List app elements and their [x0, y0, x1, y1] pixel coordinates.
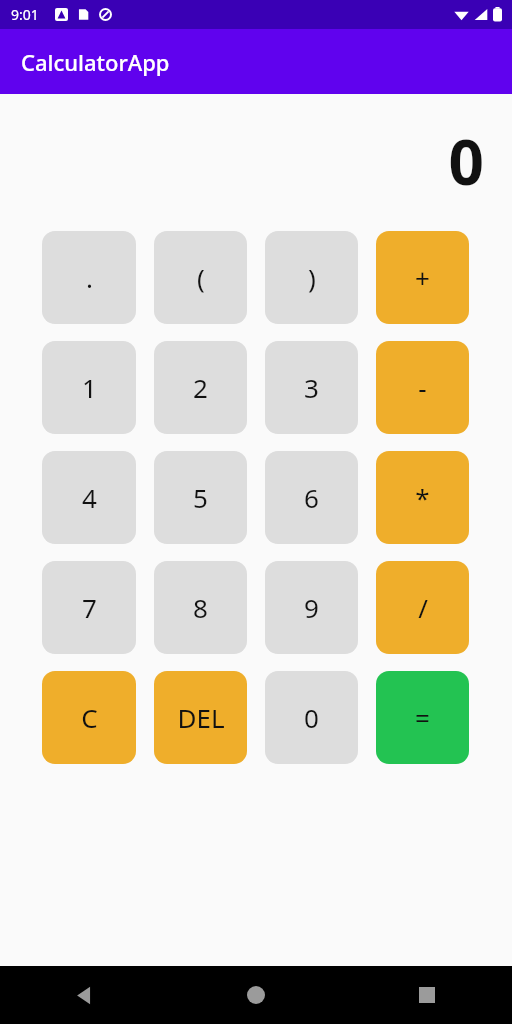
button[interactable]: = [376, 671, 469, 764]
button[interactable]: ( [154, 231, 247, 324]
staticText: 5 [193, 480, 208, 515]
button[interactable]: 5 [154, 451, 247, 544]
staticText: * [415, 480, 430, 515]
staticText: CalculatorApp [21, 47, 170, 77]
button[interactable]: / [376, 561, 469, 654]
button[interactable]: + [376, 231, 469, 324]
staticText: 6 [304, 480, 319, 515]
button[interactable]: Back [0, 966, 170, 1024]
staticText: 9 [304, 590, 319, 625]
button[interactable]: * [376, 451, 469, 544]
button[interactable]: C [42, 671, 136, 764]
button[interactable]: 9 [265, 561, 358, 654]
staticText: ( [197, 260, 205, 295]
staticText: . [86, 260, 93, 295]
button[interactable]: . [42, 231, 136, 324]
button[interactable]: 1 [42, 341, 136, 434]
staticText: 7 [82, 590, 97, 625]
staticText: - [418, 370, 427, 405]
staticText: 1 [82, 370, 97, 405]
button[interactable]: Home [170, 966, 341, 1024]
button[interactable]: 2 [154, 341, 247, 434]
staticText: = [415, 700, 430, 735]
staticText: C [81, 700, 98, 735]
staticText: DEL [177, 700, 225, 735]
button[interactable]: 6 [265, 451, 358, 544]
staticText: 8 [193, 590, 208, 625]
staticText: 3 [304, 370, 319, 405]
staticText: 0 [304, 700, 319, 735]
staticText: 9:01 [11, 5, 39, 24]
button[interactable]: DEL [154, 671, 247, 764]
staticText: 0 [448, 119, 484, 203]
button[interactable]: 3 [265, 341, 358, 434]
button[interactable]: 0 [265, 671, 358, 764]
staticText: + [415, 260, 430, 295]
button[interactable]: 4 [42, 451, 136, 544]
button[interactable]: - [376, 341, 469, 434]
staticText: / [418, 590, 428, 625]
staticText: 4 [82, 480, 97, 515]
button[interactable]: 7 [42, 561, 136, 654]
button[interactable]: Recent apps [341, 966, 512, 1024]
staticText: ) [308, 260, 316, 295]
staticText: 2 [193, 370, 208, 405]
button[interactable]: 8 [154, 561, 247, 654]
button[interactable]: ) [265, 231, 358, 324]
